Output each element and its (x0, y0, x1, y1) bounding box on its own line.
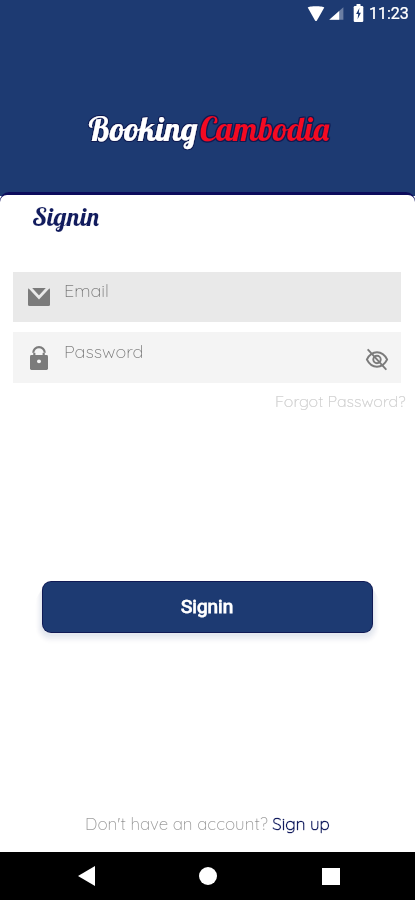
staticText: Booking (87, 107, 198, 148)
staticText: Cambodia (199, 109, 331, 150)
staticText: Cambodia (198, 109, 330, 150)
staticText: Signin (181, 595, 234, 617)
button[interactable]: Recents (307, 852, 355, 900)
button[interactable]: Don't have an account? Sign up (85, 813, 330, 834)
staticText: Don't have an account? Sign up (85, 813, 330, 834)
staticText: Signin (33, 200, 101, 233)
button[interactable]: Back (62, 852, 110, 900)
staticText: Booking (87, 108, 198, 149)
button[interactable]: Forgot Password? (275, 391, 406, 411)
staticText: Email (64, 279, 109, 302)
staticText: Cambodia (200, 107, 332, 148)
staticText: Cambodia (199, 108, 331, 149)
staticText: Booking (86, 107, 197, 148)
staticText: Booking (88, 108, 199, 149)
staticText: Cambodia (199, 107, 331, 148)
staticText: Cambodia (198, 107, 330, 148)
button[interactable]: Show password (355, 338, 398, 381)
button[interactable]: Signin (43, 582, 372, 632)
button[interactable]: Home (184, 852, 232, 900)
staticText: 11:23 (369, 4, 409, 23)
staticText: Booking (86, 108, 197, 149)
staticText: Cambodia (198, 108, 330, 149)
staticText: Booking (87, 109, 198, 150)
staticText: Booking (86, 109, 197, 150)
staticText: Cambodia (200, 109, 332, 150)
button[interactable]: Email (13, 272, 401, 322)
staticText: Cambodia (200, 108, 332, 149)
staticText: Password (64, 340, 144, 363)
staticText: Booking (88, 107, 199, 148)
staticText: Booking (88, 109, 199, 150)
button[interactable]: Password (13, 332, 401, 383)
